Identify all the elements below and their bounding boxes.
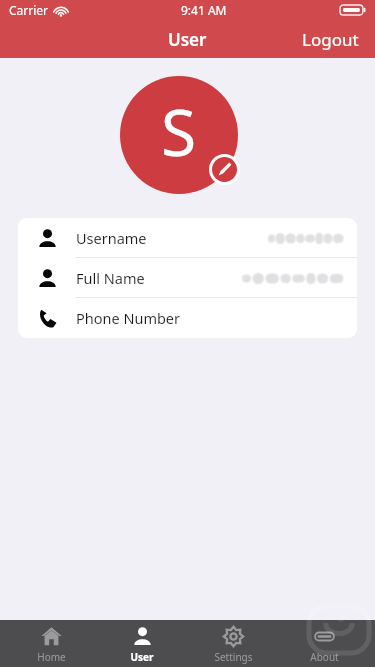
staticText: Phone Number — [76, 308, 181, 328]
button[interactable]: Logout — [286, 21, 375, 58]
button[interactable]: Settings — [193, 620, 273, 667]
staticText: Full Name — [76, 268, 145, 288]
staticText: Home — [37, 650, 66, 664]
button[interactable]: Username — [18, 218, 357, 258]
staticText: User — [168, 28, 207, 51]
button[interactable]: User — [102, 620, 182, 667]
staticText: 9:41 AM — [181, 2, 227, 18]
staticText: Logout — [302, 28, 359, 51]
staticText: User — [130, 650, 154, 664]
staticText: Settings — [214, 650, 253, 664]
staticText: S — [161, 88, 197, 175]
button[interactable]: Profile picture — [120, 76, 238, 194]
button[interactable]: Full Name — [18, 258, 357, 298]
button[interactable]: About — [284, 620, 364, 667]
staticText: Carrier — [9, 2, 49, 18]
staticText: About — [310, 650, 339, 664]
staticText: Username — [76, 228, 147, 248]
button[interactable]: Home — [11, 620, 91, 667]
button[interactable]: Phone Number — [18, 298, 357, 338]
button[interactable]: Edit profile picture — [212, 157, 237, 182]
